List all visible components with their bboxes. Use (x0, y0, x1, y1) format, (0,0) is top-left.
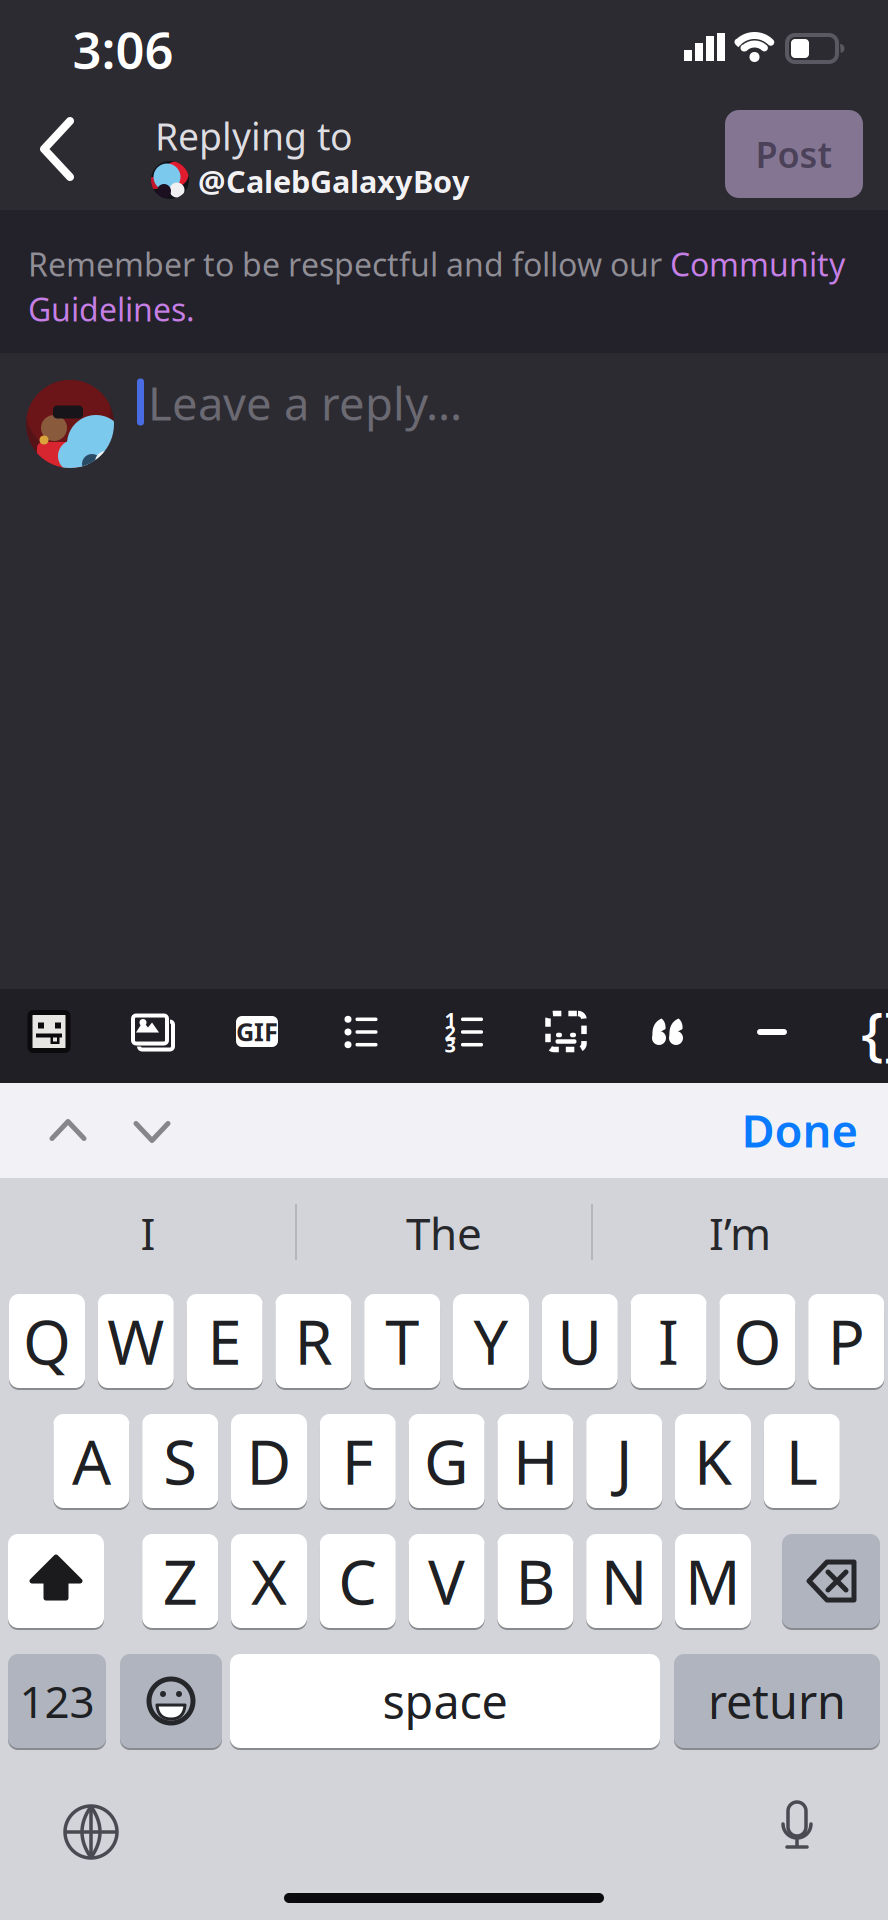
staticText: Guidelines. (28, 288, 195, 330)
button[interactable]: F (320, 1413, 396, 1509)
button[interactable]: U (542, 1293, 618, 1389)
button[interactable]: C (320, 1533, 396, 1629)
button[interactable]: Numbered list (441, 1010, 485, 1054)
staticText: A (72, 1420, 111, 1502)
staticText: Remember to be respectful and follow our… (28, 243, 845, 285)
staticText: return (708, 1670, 846, 1732)
staticText: Q (23, 1300, 71, 1382)
button[interactable]: L (764, 1413, 840, 1509)
staticText: Leave a reply... (148, 373, 462, 433)
staticText: 3:06 (72, 15, 173, 83)
button[interactable]: Done (741, 1100, 858, 1160)
staticText: J (616, 1420, 633, 1502)
button[interactable]: I (631, 1293, 707, 1389)
button[interactable]: Y (453, 1293, 529, 1389)
button[interactable]: 123 (8, 1653, 106, 1749)
button[interactable]: D (231, 1413, 307, 1509)
staticText: space (382, 1670, 507, 1732)
staticText: D (246, 1420, 291, 1502)
staticText: V (428, 1540, 465, 1622)
button[interactable]: Delete (782, 1533, 880, 1629)
button[interactable]: O (719, 1293, 795, 1389)
button[interactable]: Back (34, 95, 114, 205)
staticText: H (513, 1420, 558, 1502)
staticText: N (601, 1540, 648, 1622)
button[interactable]: K (675, 1413, 751, 1509)
staticText: W (107, 1300, 164, 1382)
staticText: Z (163, 1540, 198, 1622)
button[interactable]: Emoji (120, 1653, 222, 1749)
button[interactable]: Next field (132, 1119, 172, 1144)
staticText: P (828, 1300, 865, 1382)
staticText: Post (755, 130, 832, 178)
staticText: The (406, 1204, 482, 1262)
staticText: X (251, 1540, 287, 1622)
button[interactable]: N (586, 1533, 662, 1629)
button[interactable]: Bulleted list (339, 1010, 383, 1054)
button[interactable]: I’m (600, 1188, 880, 1278)
staticText: 1 (444, 1006, 455, 1033)
button[interactable]: GIF (235, 1009, 279, 1053)
staticText: B (515, 1540, 555, 1622)
staticText: Done (741, 1100, 858, 1160)
button[interactable]: W (98, 1293, 174, 1389)
staticText: Replying to (155, 111, 353, 161)
staticText: C (338, 1540, 377, 1622)
button[interactable]: Q (9, 1293, 85, 1389)
button[interactable]: Spoiler (544, 1009, 588, 1053)
button[interactable]: E (187, 1293, 263, 1389)
staticText: GIF (236, 1015, 278, 1048)
staticText: 3 (444, 1031, 455, 1058)
button[interactable]: Next keyboard (61, 1802, 121, 1862)
button[interactable]: I (8, 1188, 288, 1278)
button[interactable]: H (497, 1413, 573, 1509)
button[interactable]: Divider (750, 1010, 794, 1054)
button[interactable]: T (364, 1293, 440, 1389)
staticText: I (658, 1300, 679, 1382)
staticText: O (733, 1300, 781, 1382)
button[interactable]: Z (142, 1533, 218, 1629)
button[interactable]: G (409, 1413, 485, 1509)
staticText: U (557, 1300, 602, 1382)
button[interactable]: Code (854, 1010, 888, 1054)
button[interactable]: M (675, 1533, 751, 1629)
button[interactable]: Shift (8, 1533, 104, 1629)
button[interactable]: B (497, 1533, 573, 1629)
staticText: R (294, 1300, 332, 1382)
button[interactable]: Quote (646, 1010, 690, 1054)
staticText: T (385, 1300, 419, 1382)
button[interactable]: R (275, 1293, 351, 1389)
staticText: I’m (709, 1204, 771, 1262)
button[interactable]: X (231, 1533, 307, 1629)
staticText: K (694, 1420, 732, 1502)
staticText: G (424, 1420, 469, 1502)
button[interactable]: V (409, 1533, 485, 1629)
button[interactable]: Photos (130, 1009, 174, 1053)
button[interactable]: Previous field (48, 1117, 88, 1142)
staticText: Y (473, 1300, 508, 1382)
button[interactable]: return (674, 1653, 880, 1749)
button[interactable]: P (808, 1293, 884, 1389)
staticText: F (342, 1420, 374, 1502)
button[interactable]: Post (725, 110, 863, 198)
staticText: I (140, 1204, 155, 1262)
staticText: M (685, 1540, 741, 1622)
staticText: 123 (19, 1672, 94, 1730)
button[interactable]: Stickers (27, 1009, 71, 1053)
button[interactable]: The (304, 1188, 584, 1278)
button[interactable]: S (142, 1413, 218, 1509)
staticText: E (208, 1300, 242, 1382)
staticText: {} (861, 993, 888, 1071)
button[interactable]: space (230, 1653, 660, 1749)
button[interactable]: Dictate (767, 1797, 827, 1857)
staticText: @CalebGalaxyBoy (198, 161, 470, 201)
staticText: S (163, 1420, 197, 1502)
staticText: 2 (444, 1019, 455, 1045)
staticText: L (786, 1420, 818, 1502)
button[interactable]: J (586, 1413, 662, 1509)
button[interactable]: A (53, 1413, 129, 1509)
